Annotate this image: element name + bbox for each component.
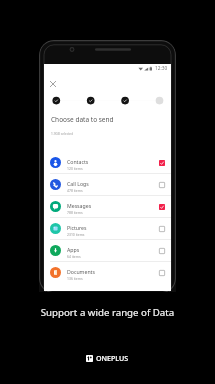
button[interactable]: Close xyxy=(45,76,61,92)
button[interactable]: Documents xyxy=(44,262,171,283)
button[interactable]: Call Logs xyxy=(44,174,171,195)
staticText: Messages xyxy=(67,202,92,209)
staticText: Apps xyxy=(67,246,80,253)
staticText: Choose data to send xyxy=(51,115,114,124)
staticText: ONEPLUS xyxy=(96,353,129,363)
staticText: Support a wide range of Data xyxy=(0,306,215,319)
staticText: 136 items xyxy=(67,276,83,281)
button[interactable]: Pictures xyxy=(44,218,171,239)
staticText: 64 items xyxy=(67,254,81,259)
staticText: 12:30 xyxy=(155,65,168,72)
button[interactable]: Messages xyxy=(44,196,171,217)
staticText: 2310 items xyxy=(67,232,85,237)
button[interactable]: Contacts xyxy=(44,152,171,173)
staticText: 478 items xyxy=(67,188,83,193)
staticText: 120 items xyxy=(67,166,83,171)
button[interactable]: Apps xyxy=(44,240,171,261)
staticText: 788 items xyxy=(67,210,83,215)
staticText: 1.9GB selected xyxy=(51,132,74,136)
staticText: Call Logs xyxy=(67,180,89,187)
staticText: Documents xyxy=(67,268,95,275)
staticText: Pictures xyxy=(67,224,87,231)
staticText: Contacts xyxy=(67,158,89,165)
